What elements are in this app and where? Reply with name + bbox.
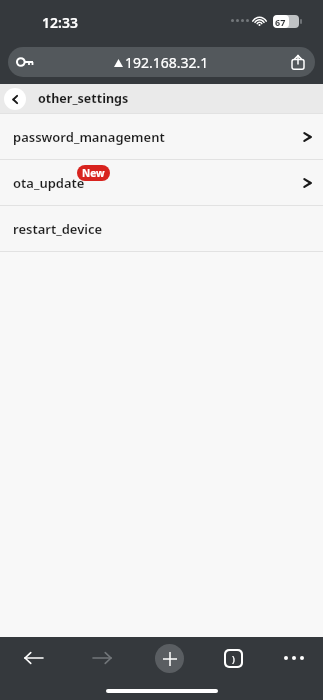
staticText: New bbox=[82, 166, 105, 180]
button[interactable]: ota_update bbox=[0, 160, 323, 205]
staticText: 12:33 bbox=[42, 13, 78, 32]
button[interactable]: Tabs bbox=[202, 637, 264, 679]
staticText: ota_update bbox=[13, 174, 85, 192]
staticText: 192.168.32.1 bbox=[125, 53, 209, 72]
button[interactable]: More options bbox=[264, 637, 323, 679]
staticText: restart_device bbox=[13, 220, 103, 238]
button[interactable]: Back bbox=[4, 88, 26, 110]
staticText: password_management bbox=[13, 128, 165, 146]
button[interactable]: Forward bbox=[68, 637, 136, 679]
staticText: other_settings bbox=[38, 90, 129, 107]
button[interactable]: password_management bbox=[0, 114, 323, 159]
button[interactable]: Share bbox=[288, 52, 308, 72]
staticText: ) bbox=[232, 653, 235, 665]
staticText: 67 bbox=[275, 16, 286, 28]
other: Saved password bbox=[16, 56, 34, 68]
button[interactable]: Saved password bbox=[8, 47, 315, 77]
button[interactable]: restart_device bbox=[0, 206, 323, 251]
button[interactable]: New tab bbox=[136, 637, 202, 679]
button[interactable]: Back bbox=[0, 637, 68, 679]
